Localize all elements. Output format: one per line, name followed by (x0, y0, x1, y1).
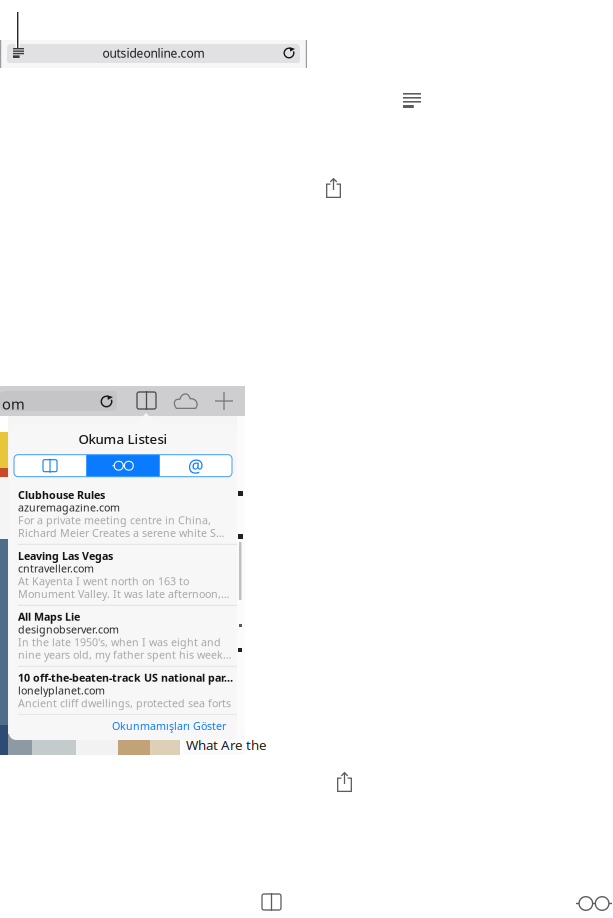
staticText: Clubhouse Rules (18, 488, 105, 502)
button[interactable]: All Maps Lie (9, 606, 237, 666)
button[interactable]: 10 off-the-beaten-track US national par… (9, 667, 237, 714)
staticText: @ (188, 454, 204, 477)
staticText: In the late 1950's, when I was eight and (18, 635, 221, 649)
staticText: All Maps Lie (18, 610, 80, 624)
staticText: 10 off-the-beaten-track US national par… (18, 671, 233, 685)
staticText: lonelyplanet.com (18, 683, 105, 697)
staticText: Okunmamışları Göster (112, 719, 226, 733)
staticText: Leaving Las Vegas (18, 549, 113, 563)
staticText: nine years old, my father spent his week… (18, 648, 231, 662)
button[interactable]: Okunmamışları Göster (112, 715, 237, 741)
button[interactable]: Reading List (576, 896, 612, 911)
staticText: Richard Meier Creates a serene white S… (18, 526, 224, 540)
staticText: cntraveller.com (18, 561, 94, 575)
staticText: Monument Valley. It was late afternoon,… (18, 587, 229, 601)
staticText: azuremagazine.com (18, 500, 120, 515)
button[interactable]: Clubhouse Rules (9, 484, 237, 544)
staticText: om (2, 394, 25, 413)
staticText: For a private meeting centre in China, (18, 513, 211, 527)
button[interactable]: Reload (278, 42, 300, 64)
button[interactable]: Leaving Las Vegas (9, 545, 237, 605)
staticText: designobserver.com (18, 622, 119, 636)
staticText: Okuma Listesi (78, 430, 167, 448)
staticText: outsideonline.com (102, 45, 204, 61)
staticText: At Kayenta I went north on 163 to (18, 574, 189, 588)
button[interactable]: Show Reader View (8, 43, 29, 63)
staticText: Ancient cliff dwellings, protected sea f… (18, 696, 231, 710)
staticText: What Are the (186, 736, 267, 754)
